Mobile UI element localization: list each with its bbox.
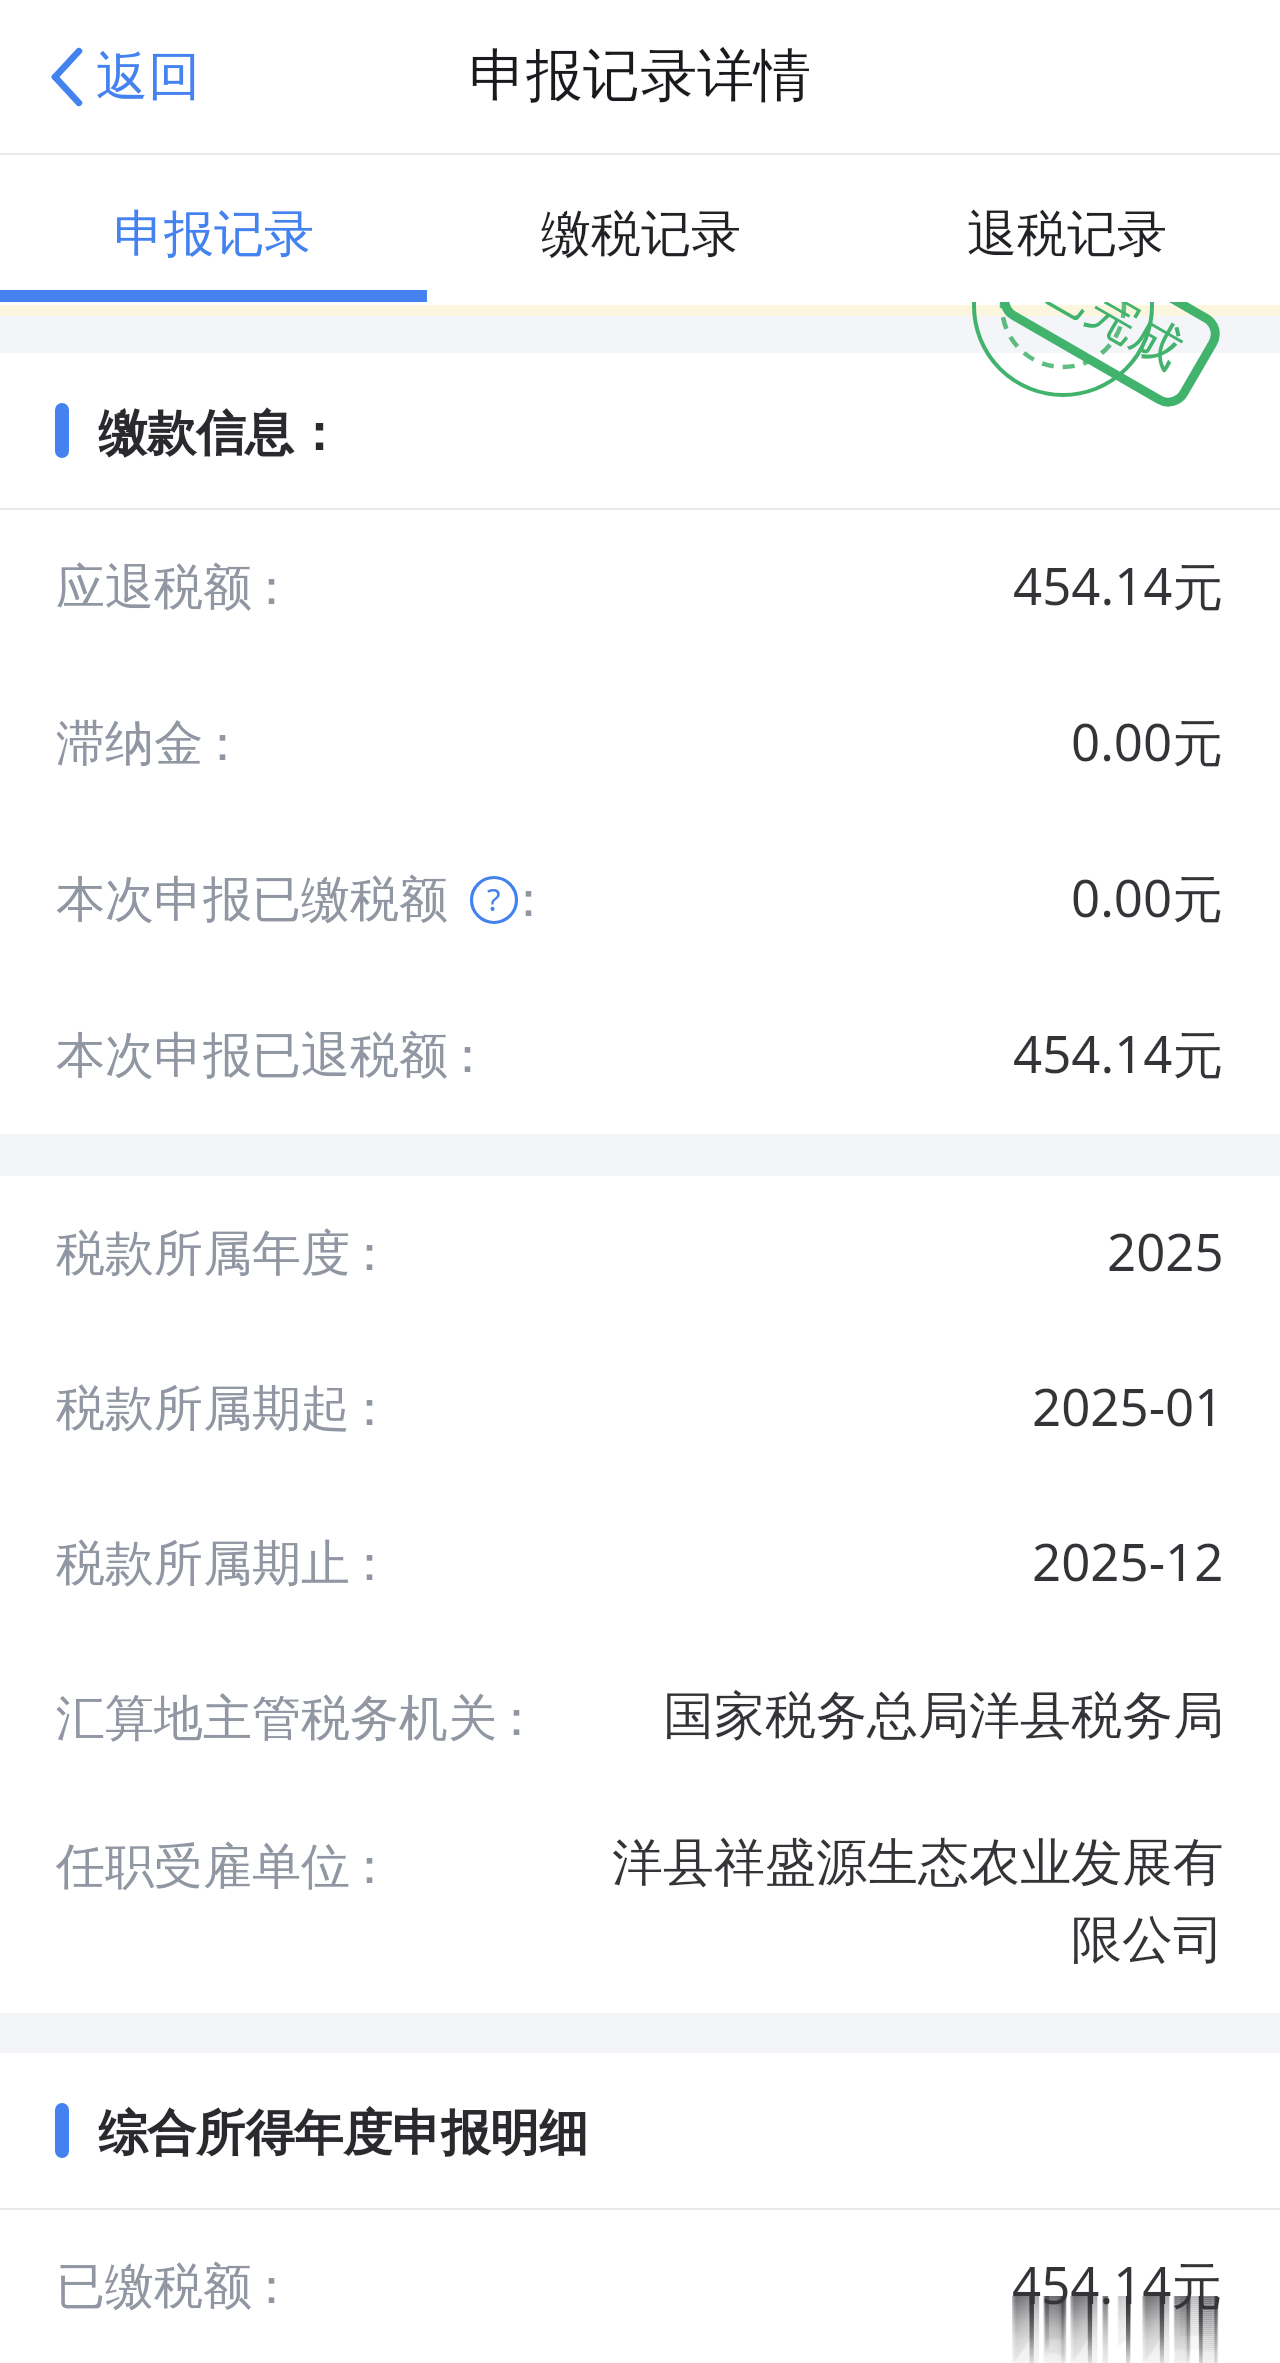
staticText: 454.14元 xyxy=(1011,2300,1222,2363)
staticText: 滞纳金 xyxy=(56,713,203,775)
staticText: 454.14元 xyxy=(1011,2296,1222,2314)
button[interactable]: 454.14元 xyxy=(0,2210,1280,2363)
staticText: 454.14元 xyxy=(1011,2298,1222,2363)
staticText: 税款所属期止 xyxy=(56,1533,350,1595)
staticText: ： xyxy=(492,1688,541,1750)
staticText: 本次申报已缴税额 xyxy=(56,869,448,931)
staticText: 454.14元 xyxy=(1011,2296,1222,2326)
staticText: 454.14元 xyxy=(1011,2296,1222,2356)
staticText: ： xyxy=(345,1836,394,1898)
staticText: 454.14元 xyxy=(1011,2296,1222,2302)
staticText: 454.14元 xyxy=(1011,2296,1222,2330)
staticText: 454.14元 xyxy=(1011,2296,1222,2318)
staticText: 454.14元 xyxy=(1012,2249,1223,2319)
button[interactable]: 返回 xyxy=(0,0,224,153)
staticText: 454.14元 xyxy=(1011,2296,1222,2332)
staticText: 454.14元 xyxy=(1011,2296,1222,2340)
staticText: 返回 xyxy=(96,44,200,110)
button[interactable]: 退税记录 xyxy=(854,161,1280,308)
staticText: 综合所得年度申报明细 xyxy=(98,2103,588,2165)
staticText: 454.14元 xyxy=(1011,2296,1222,2360)
staticText: ? xyxy=(487,878,501,920)
staticText: 0.00元 xyxy=(1071,706,1224,776)
button[interactable]: 本次申报已退税额 xyxy=(0,978,1280,1134)
staticText: 454.14元 xyxy=(1011,2296,1222,2328)
staticText: 洋县祥盛源生态农业发展有限公司 xyxy=(608,1831,1224,1973)
staticText: 454.14元 xyxy=(1011,2296,1222,2363)
staticText: 454.14元 xyxy=(1011,2296,1222,2363)
staticText: 454.14元 xyxy=(1011,2318,1222,2363)
staticText: 454.14元 xyxy=(1011,2296,1222,2362)
staticText: 454.14元 xyxy=(1011,2296,1222,2348)
staticText: 454.14元 xyxy=(1011,2296,1222,2336)
staticText: 2025 xyxy=(1107,1216,1224,1285)
button[interactable]: 税款所属期起 xyxy=(0,1331,1280,1486)
button[interactable]: 任职受雇单位 xyxy=(0,1796,1280,2013)
staticText: ： xyxy=(198,713,247,775)
staticText: 汇算地主管税务机关 xyxy=(56,1688,497,1750)
staticText: ： xyxy=(247,2256,296,2318)
staticText: ： xyxy=(345,1378,394,1440)
staticText: 454.14元 xyxy=(1011,2296,1222,2304)
staticText: 454.14元 xyxy=(1011,2296,1222,2342)
button[interactable]: 本次申报已缴税额 xyxy=(0,822,1280,978)
button[interactable]: 税款所属年度 xyxy=(0,1176,1280,1331)
staticText: 已缴税额 xyxy=(56,2256,252,2318)
staticText: 已完成 xyxy=(1033,302,1194,382)
staticText: 应退税额 xyxy=(56,557,252,619)
button[interactable]: 汇算地主管税务机关 xyxy=(0,1641,1280,1796)
staticText: 454.14元 xyxy=(1011,2296,1222,2338)
button[interactable]: 申报记录 xyxy=(0,161,427,308)
staticText: 税款所属期起 xyxy=(56,1378,350,1440)
staticText: 任职受雇单位 xyxy=(56,1836,350,1898)
staticText: 本次申报已退税额 xyxy=(56,1025,448,1087)
staticText: 税款所属年度 xyxy=(56,1223,350,1285)
staticText: 缴款信息： xyxy=(98,403,343,465)
staticText: ： xyxy=(504,869,553,931)
staticText: 454.14元 xyxy=(1011,2296,1222,2310)
staticText: 454.14元 xyxy=(1011,2296,1222,2352)
staticText: 454.14元 xyxy=(1011,2314,1222,2363)
staticText: 454.14元 xyxy=(1011,2310,1222,2363)
staticText: 454.14元 xyxy=(1011,2296,1222,2354)
button[interactable]: 税款所属期止 xyxy=(0,1486,1280,1641)
staticText: 454.14元 xyxy=(1011,2312,1222,2363)
staticText: 454.14元 xyxy=(1011,2296,1222,2306)
staticText: 退税记录 xyxy=(967,203,1167,266)
staticText: 2025-01 xyxy=(1032,1371,1224,1440)
staticText: 454.14元 xyxy=(1011,2296,1222,2298)
staticText: 454.14元 xyxy=(1011,2302,1222,2363)
staticText: 454.14元 xyxy=(1011,2296,1222,2316)
staticText: 454.14元 xyxy=(1013,1018,1224,1088)
staticText: ： xyxy=(443,1025,492,1087)
staticText: 2025-12 xyxy=(1032,1526,1224,1595)
staticText: ： xyxy=(247,557,296,619)
staticText: ： xyxy=(345,1533,394,1595)
staticText: 0.00元 xyxy=(1071,862,1224,932)
staticText: 454.14元 xyxy=(1011,2296,1222,2358)
staticText: 申报记录 xyxy=(114,203,314,266)
staticText: 454.14元 xyxy=(1011,2308,1222,2363)
staticText: 454.14元 xyxy=(1011,2296,1222,2324)
staticText: 国家税务总局洋县税务局 xyxy=(663,1684,1224,1748)
staticText: 454.14元 xyxy=(1011,2296,1222,2344)
staticText: 454.14元 xyxy=(1011,2296,1222,2300)
staticText: 454.14元 xyxy=(1011,2296,1222,2308)
staticText: 454.14元 xyxy=(1011,2296,1222,2322)
button[interactable]: 应退税额 xyxy=(0,510,1280,666)
staticText: 454.14元 xyxy=(1011,2296,1222,2350)
staticText: ： xyxy=(345,1223,394,1285)
staticText: 缴税记录 xyxy=(541,203,741,266)
staticText: 454.14元 xyxy=(1011,2306,1222,2363)
staticText: 454.14元 xyxy=(1011,2296,1222,2334)
staticText: 454.14元 xyxy=(1011,2304,1222,2363)
staticText: 申报记录详情 xyxy=(469,40,811,112)
staticText: 454.14元 xyxy=(1011,2296,1222,2346)
button[interactable]: 缴税记录 xyxy=(427,161,854,308)
button[interactable]: 滞纳金 xyxy=(0,666,1280,822)
staticText: 454.14元 xyxy=(1013,550,1224,620)
staticText: 454.14元 xyxy=(1011,2296,1222,2320)
staticText: 454.14元 xyxy=(1011,2296,1222,2312)
staticText: 454.14元 xyxy=(1011,2316,1222,2363)
